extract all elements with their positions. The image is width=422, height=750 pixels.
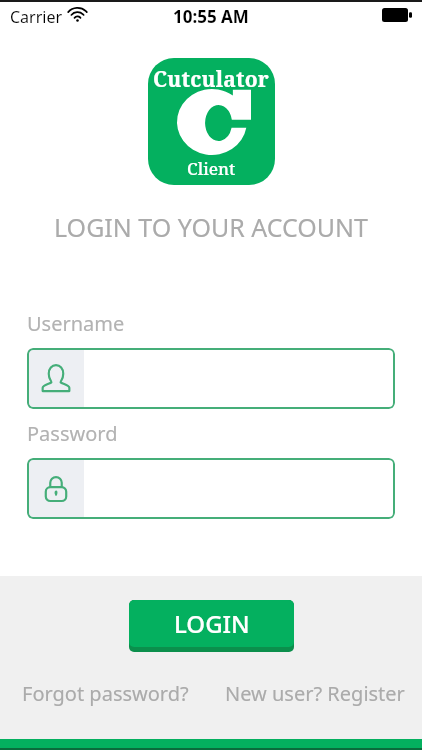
button[interactable]: Username field bbox=[27, 348, 395, 409]
staticText: Client bbox=[187, 157, 236, 180]
staticText: LOGIN bbox=[174, 607, 250, 640]
staticText: 10:55 AM bbox=[173, 5, 249, 28]
staticText: Carrier bbox=[10, 6, 63, 28]
button[interactable]: Password field bbox=[27, 458, 395, 519]
staticText: LOGIN TO YOUR ACCOUNT bbox=[54, 210, 369, 244]
button[interactable]: LOGIN bbox=[129, 600, 294, 652]
staticText: Cutculator bbox=[153, 65, 270, 94]
button[interactable]: New user? Register bbox=[225, 680, 405, 707]
staticText: Username bbox=[27, 310, 125, 337]
button[interactable]: Forgot password? bbox=[22, 680, 189, 707]
staticText: Password bbox=[27, 420, 118, 447]
